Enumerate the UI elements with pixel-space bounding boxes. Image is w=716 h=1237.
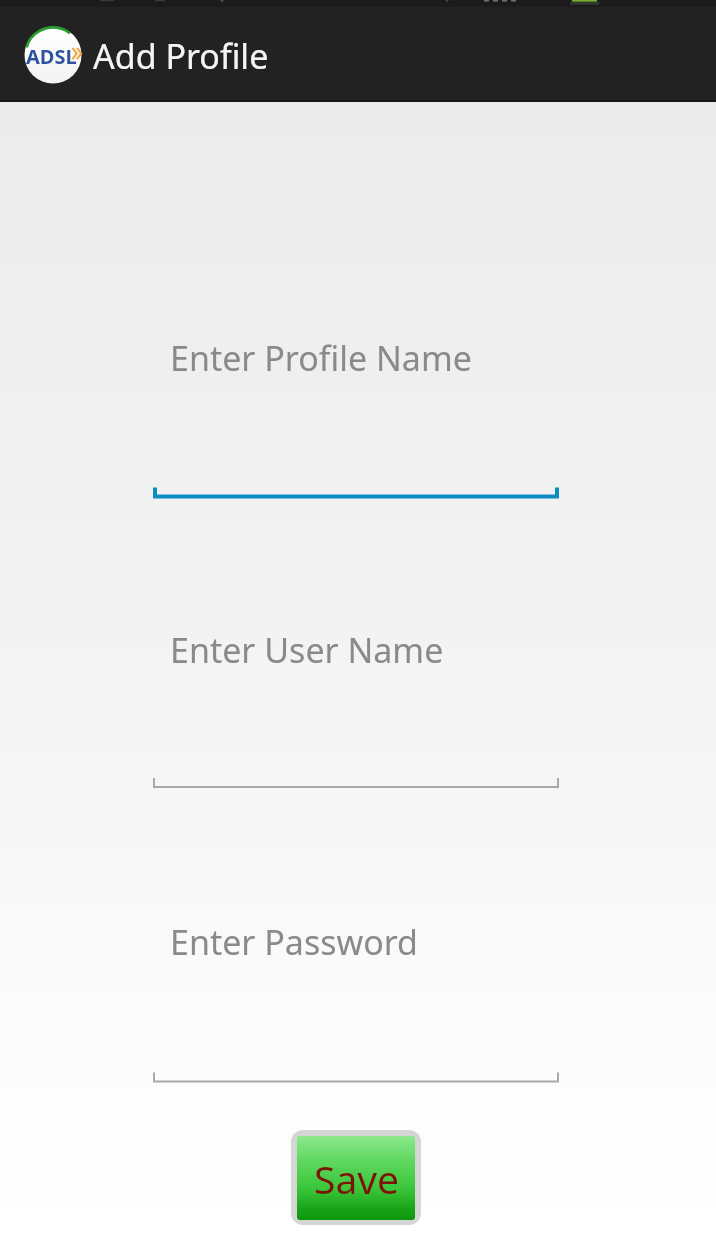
button[interactable]: ADSL logo (0, 7, 285, 102)
button[interactable]: Enter Password (0, 919, 716, 1092)
button[interactable]: Save (297, 1136, 415, 1220)
button[interactable]: Enter Profile Name (0, 335, 716, 507)
staticText: ADSL (26, 43, 77, 70)
other: ADSL logo (24, 26, 82, 84)
staticText: Add Profile (93, 33, 269, 79)
staticText: Enter User Name (170, 627, 444, 673)
staticText: Save (314, 1152, 400, 1205)
staticText: Enter Profile Name (170, 335, 472, 381)
button[interactable]: Enter User Name (0, 627, 716, 797)
staticText: Enter Password (170, 919, 419, 965)
